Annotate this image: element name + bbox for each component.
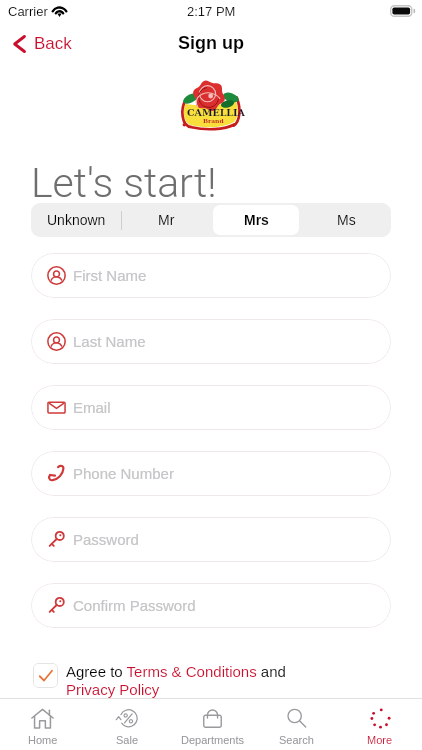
button[interactable]: Email [31, 385, 391, 430]
staticText: Unknown [47, 212, 106, 228]
button[interactable]: Sale [85, 699, 170, 750]
staticText: Sale [116, 734, 139, 746]
button[interactable]: First Name [31, 253, 391, 298]
staticText: CAMELLIA [187, 107, 245, 118]
button[interactable]: Privacy Policy [66, 681, 160, 698]
button[interactable]: More [338, 699, 422, 750]
staticText: Password [73, 531, 139, 548]
staticText: More [367, 734, 393, 746]
button[interactable]: Confirm Password [31, 583, 391, 628]
other: Camellia Brand logo [180, 83, 241, 131]
staticText: Carrier [8, 4, 48, 19]
staticText: Search [279, 734, 314, 746]
button[interactable]: Mrs [211, 203, 301, 237]
button[interactable]: Agree to terms checkbox [33, 663, 58, 688]
button[interactable]: Mr [121, 203, 211, 237]
staticText: Brand [203, 117, 224, 124]
staticText: Last Name [73, 333, 146, 350]
button[interactable]: Phone Number [31, 451, 391, 496]
button[interactable]: Unknown [31, 203, 121, 237]
button[interactable]: Ms [301, 203, 391, 237]
staticText: Departments [181, 734, 244, 746]
staticText: 2:17 PM [187, 4, 236, 19]
staticText: Email [73, 399, 111, 416]
button[interactable]: Agree to Terms & Conditions and [66, 663, 286, 680]
button[interactable]: Password [31, 517, 391, 562]
staticText: Ms [337, 212, 356, 228]
button[interactable]: Search [254, 699, 338, 750]
button[interactable]: Home [0, 699, 85, 750]
button[interactable]: Back [0, 30, 78, 57]
staticText: Confirm Password [73, 597, 196, 614]
button[interactable]: Last Name [31, 319, 391, 364]
button[interactable]: Departments [170, 699, 254, 750]
staticText: Home [28, 734, 58, 746]
staticText: Phone Number [73, 465, 174, 482]
staticText: First Name [73, 267, 147, 284]
staticText: Mr [158, 212, 175, 228]
staticText: Sign up [178, 33, 244, 53]
staticText: Mrs [244, 212, 269, 228]
staticText: Back [34, 34, 72, 53]
staticText: Let's start! [31, 159, 217, 207]
